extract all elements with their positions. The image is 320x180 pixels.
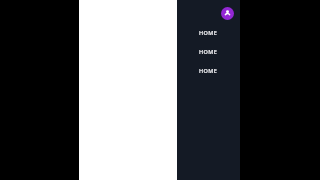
- button[interactable]: Account: [221, 7, 234, 20]
- button[interactable]: HOME: [177, 28, 240, 36]
- staticText: HOME: [199, 29, 218, 36]
- staticText: HOME: [199, 48, 218, 55]
- button[interactable]: HOME: [177, 47, 240, 55]
- staticText: HOME: [199, 67, 218, 74]
- button[interactable]: HOME: [177, 66, 240, 74]
